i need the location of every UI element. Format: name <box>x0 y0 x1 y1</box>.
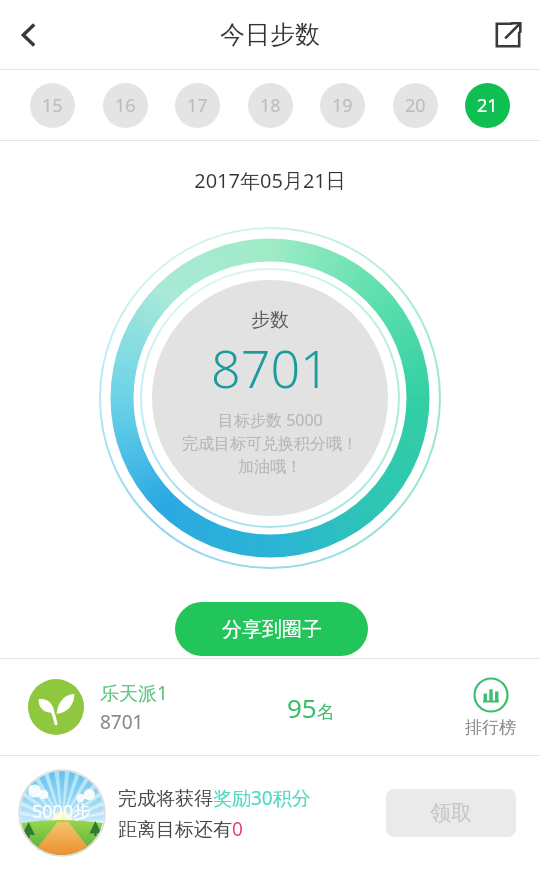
staticText: 距离目标还有0 <box>118 816 243 842</box>
staticText: 21 <box>477 93 498 118</box>
staticText: 8701 <box>100 709 144 735</box>
staticText: 15 <box>42 93 63 118</box>
staticText: 5000步 <box>32 799 92 824</box>
button[interactable]: 19 <box>320 83 365 128</box>
button[interactable]: 21 <box>465 83 510 128</box>
button[interactable]: 17 <box>175 83 220 128</box>
staticText: 19 <box>332 93 353 118</box>
staticText: 目标步数 5000 <box>218 409 323 431</box>
staticText: 8701 <box>211 332 330 403</box>
staticText: 乐天派1 <box>100 680 168 706</box>
staticText: 95名 <box>287 690 335 725</box>
button[interactable]: 领取 <box>386 789 516 837</box>
staticText: 完成目标可兑换积分哦！ <box>182 434 358 454</box>
button[interactable]: Share <box>476 3 540 67</box>
button[interactable]: 分享到圈子 <box>175 602 368 656</box>
button[interactable]: 15 <box>30 83 75 128</box>
button[interactable]: 16 <box>103 83 148 128</box>
button[interactable]: 乐天派1 <box>0 659 540 755</box>
button[interactable]: 20 <box>393 83 438 128</box>
staticText: 加油哦！ <box>238 457 302 477</box>
staticText: 今日步数 <box>220 19 320 50</box>
button[interactable]: 18 <box>248 83 293 128</box>
staticText: 17 <box>187 93 208 118</box>
staticText: 步数 <box>251 308 289 332</box>
staticText: 18 <box>260 93 281 118</box>
staticText: 排行榜 <box>465 717 516 738</box>
button[interactable]: Back <box>0 6 58 64</box>
staticText: 完成将获得奖励30积分 <box>118 785 311 811</box>
staticText: 20 <box>405 93 426 118</box>
staticText: 分享到圈子 <box>222 617 322 642</box>
staticText: 2017年05月21日 <box>0 167 540 194</box>
staticText: 领取 <box>430 800 472 826</box>
button[interactable]: 排行榜 <box>465 677 516 738</box>
staticText: 16 <box>115 93 136 118</box>
